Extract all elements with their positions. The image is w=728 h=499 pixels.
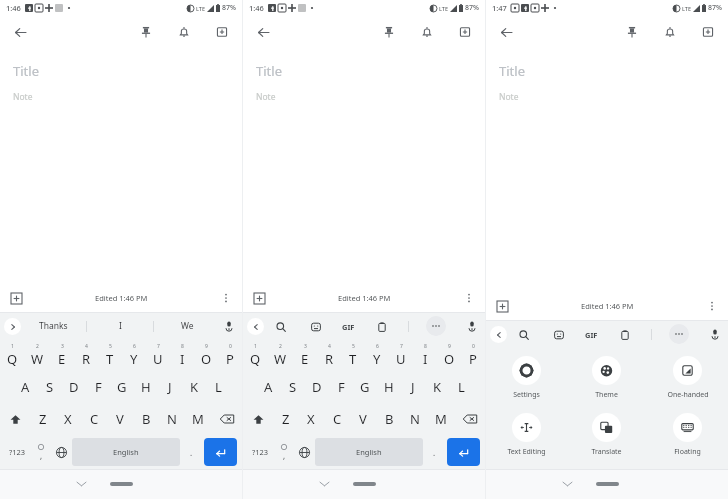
button[interactable]: Enter (447, 438, 480, 466)
button[interactable]: B (376, 403, 402, 435)
button[interactable]: 2 (268, 339, 293, 371)
button[interactable]: 4 (317, 339, 341, 371)
button[interactable]: 3 (50, 339, 74, 371)
button[interactable]: 5 (341, 339, 365, 371)
button[interactable]: More (669, 324, 689, 344)
button[interactable]: C (81, 403, 107, 435)
button[interactable]: A (13, 371, 38, 403)
button[interactable]: G (110, 371, 134, 403)
button[interactable]: More options (460, 289, 478, 307)
button[interactable]: Language (50, 438, 72, 466)
button[interactable]: Back (9, 21, 31, 43)
button[interactable]: Archive (697, 21, 719, 43)
button[interactable]: Thanks (21, 313, 86, 339)
button[interactable]: Clipboard (615, 325, 634, 344)
button[interactable]: , (31, 438, 50, 466)
button[interactable]: Hide keyboard (557, 474, 577, 494)
button[interactable]: Home (596, 482, 619, 486)
button[interactable]: H (134, 371, 158, 403)
button[interactable]: 0 (461, 339, 485, 371)
button[interactable]: English (315, 438, 423, 466)
button[interactable]: More options (217, 289, 235, 307)
button[interactable]: . (180, 438, 202, 466)
button[interactable]: Home (110, 482, 133, 486)
button[interactable]: GIF (585, 325, 598, 344)
button[interactable]: Backspace (211, 403, 242, 435)
button[interactable]: GIF (342, 317, 355, 336)
button[interactable]: One-handed (647, 356, 728, 400)
button[interactable]: N (402, 403, 428, 435)
button[interactable]: L (206, 371, 230, 403)
button[interactable]: 4 (74, 339, 98, 371)
button[interactable]: S (281, 371, 305, 403)
button[interactable]: Back (247, 318, 264, 335)
button[interactable]: 2 (25, 339, 50, 371)
button[interactable]: M (185, 403, 211, 435)
button[interactable]: Floating (647, 413, 728, 457)
button[interactable]: J (401, 371, 425, 403)
button[interactable]: Search (271, 317, 290, 336)
button[interactable]: X (55, 403, 81, 435)
button[interactable]: Reminder (659, 21, 681, 43)
button[interactable]: 9 (437, 339, 461, 371)
button[interactable]: ?123 (3, 438, 31, 466)
button[interactable]: 5 (98, 339, 122, 371)
button[interactable]: X (298, 403, 324, 435)
button[interactable]: S (38, 371, 62, 403)
button[interactable]: Hide keyboard (71, 474, 91, 494)
button[interactable]: C (324, 403, 350, 435)
button[interactable]: Back (252, 21, 274, 43)
button[interactable]: D (305, 371, 329, 403)
button[interactable]: Expand (4, 318, 21, 335)
button[interactable]: Language (293, 438, 315, 466)
button[interactable]: 8 (413, 339, 437, 371)
button[interactable]: More (426, 316, 446, 336)
button[interactable]: 1 (0, 339, 25, 371)
button[interactable]: N (159, 403, 185, 435)
button[interactable]: F (329, 371, 353, 403)
button[interactable]: B (133, 403, 159, 435)
button[interactable]: Enter (204, 438, 237, 466)
button[interactable]: Z (30, 403, 55, 435)
button[interactable]: K (425, 371, 449, 403)
button[interactable]: Add (6, 288, 26, 308)
button[interactable]: G (353, 371, 377, 403)
button[interactable]: We (154, 313, 220, 339)
button[interactable]: Add (249, 288, 269, 308)
button[interactable]: 6 (365, 339, 389, 371)
button[interactable]: 9 (194, 339, 218, 371)
button[interactable]: Reminder (416, 21, 438, 43)
button[interactable]: Theme (566, 356, 647, 400)
button[interactable]: Backspace (454, 403, 485, 435)
button[interactable]: More options (703, 297, 721, 315)
button[interactable]: Pin (378, 21, 400, 43)
button[interactable]: V (107, 403, 133, 435)
button[interactable]: Emoji (549, 325, 568, 344)
button[interactable]: Reminder (173, 21, 195, 43)
button[interactable]: English (72, 438, 180, 466)
button[interactable]: . (423, 438, 445, 466)
button[interactable]: ?123 (246, 438, 274, 466)
button[interactable]: , (274, 438, 293, 466)
button[interactable]: 0 (218, 339, 242, 371)
button[interactable]: 8 (170, 339, 194, 371)
button[interactable]: F (86, 371, 110, 403)
button[interactable]: Add (492, 296, 512, 316)
button[interactable]: V (350, 403, 376, 435)
button[interactable]: Text Editing (486, 413, 566, 457)
button[interactable]: I (87, 313, 153, 339)
button[interactable]: Search (514, 325, 533, 344)
button[interactable]: Archive (211, 21, 233, 43)
button[interactable]: 7 (389, 339, 413, 371)
button[interactable]: Shift (243, 403, 273, 435)
button[interactable]: 6 (122, 339, 146, 371)
button[interactable]: Translate (566, 413, 647, 457)
button[interactable]: M (428, 403, 454, 435)
button[interactable]: Settings (486, 356, 566, 400)
button[interactable]: A (256, 371, 281, 403)
button[interactable]: Z (273, 403, 298, 435)
button[interactable]: Voice input (220, 317, 238, 335)
button[interactable]: Voice input (463, 317, 481, 335)
button[interactable]: Shift (0, 403, 30, 435)
button[interactable]: Emoji (306, 317, 325, 336)
